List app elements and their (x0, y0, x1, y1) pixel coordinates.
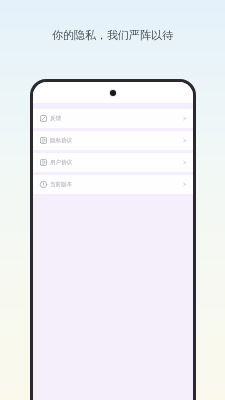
button[interactable]: 当前版本 (33, 175, 193, 194)
staticText: 反馈 (50, 115, 61, 122)
staticText: 用户协议 (50, 159, 72, 166)
staticText: 当前版本 (50, 181, 72, 188)
button[interactable]: 隐私协议 (33, 131, 193, 150)
button[interactable]: 反馈 (33, 109, 193, 128)
staticText: 隐私协议 (50, 137, 72, 144)
staticText: 你的隐私，我们严阵以待 (52, 28, 173, 42)
button[interactable]: 用户协议 (33, 153, 193, 172)
